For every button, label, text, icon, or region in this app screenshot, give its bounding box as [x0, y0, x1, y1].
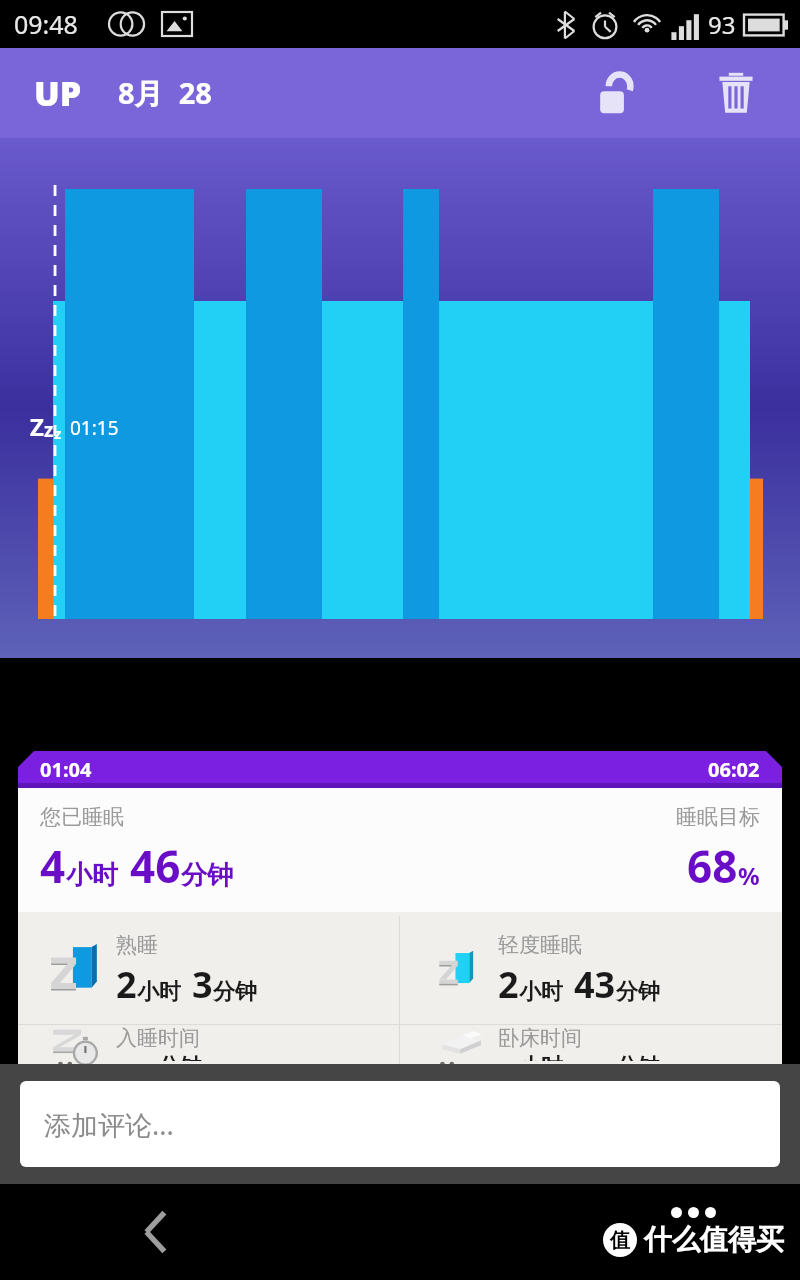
staticText: 您已睡眠 [40, 804, 124, 830]
staticText: 入睡时间 [116, 1025, 200, 1051]
staticText: 轻度睡眠 [498, 932, 582, 958]
staticText: 小时 [519, 1053, 563, 1061]
staticText: 熟睡 [116, 932, 158, 958]
staticText: 3 [192, 960, 213, 1009]
staticText: 值 [610, 1228, 630, 1253]
button[interactable]: 卧床时间 [400, 1025, 782, 1064]
button[interactable]: 轻度睡眠 [400, 916, 782, 1024]
staticText: % [738, 859, 760, 892]
staticText: 8月 28 [118, 73, 212, 113]
staticText: 分钟 [181, 859, 233, 892]
staticText: 小时 [137, 978, 181, 1006]
staticText: 什么值得买 [644, 1222, 784, 1257]
staticText: 添加评论... [44, 1106, 174, 1143]
staticText: 68 [687, 836, 738, 896]
staticText: UP [34, 70, 82, 116]
staticText: 46 [130, 836, 181, 896]
staticText: 分钟 [616, 978, 660, 1006]
button[interactable]: 熟睡 [18, 916, 399, 1024]
staticText: 2 [498, 960, 519, 1009]
staticText: 2 [116, 960, 137, 1009]
staticText: 93 [708, 8, 736, 41]
staticText: 分钟 [213, 978, 257, 1006]
staticText: 分钟 [158, 1053, 202, 1061]
staticText: Z [30, 410, 44, 443]
button[interactable]: 您已睡眠 [18, 788, 782, 912]
button[interactable]: Back [120, 1196, 192, 1268]
staticText: 06:02 [708, 756, 760, 783]
staticText: 01:04 [40, 756, 92, 783]
staticText: 01:15 [70, 415, 119, 441]
staticText: z [44, 417, 54, 443]
button[interactable]: Delete [704, 61, 768, 125]
staticText: 09:48 [14, 7, 78, 41]
staticText: z [54, 423, 62, 443]
staticText: 小时 [66, 859, 118, 892]
staticText: 小时 [519, 978, 563, 1006]
button[interactable]: Unlock [584, 61, 648, 125]
staticText: 4 [40, 836, 66, 896]
staticText: 睡眠目标 [676, 804, 760, 830]
staticText: 分钟 [616, 1053, 660, 1061]
staticText: 43 [574, 960, 616, 1009]
staticText: 卧床时间 [498, 1025, 582, 1051]
button[interactable]: 入睡时间 [18, 1025, 399, 1064]
button[interactable]: 添加评论... [20, 1081, 780, 1167]
